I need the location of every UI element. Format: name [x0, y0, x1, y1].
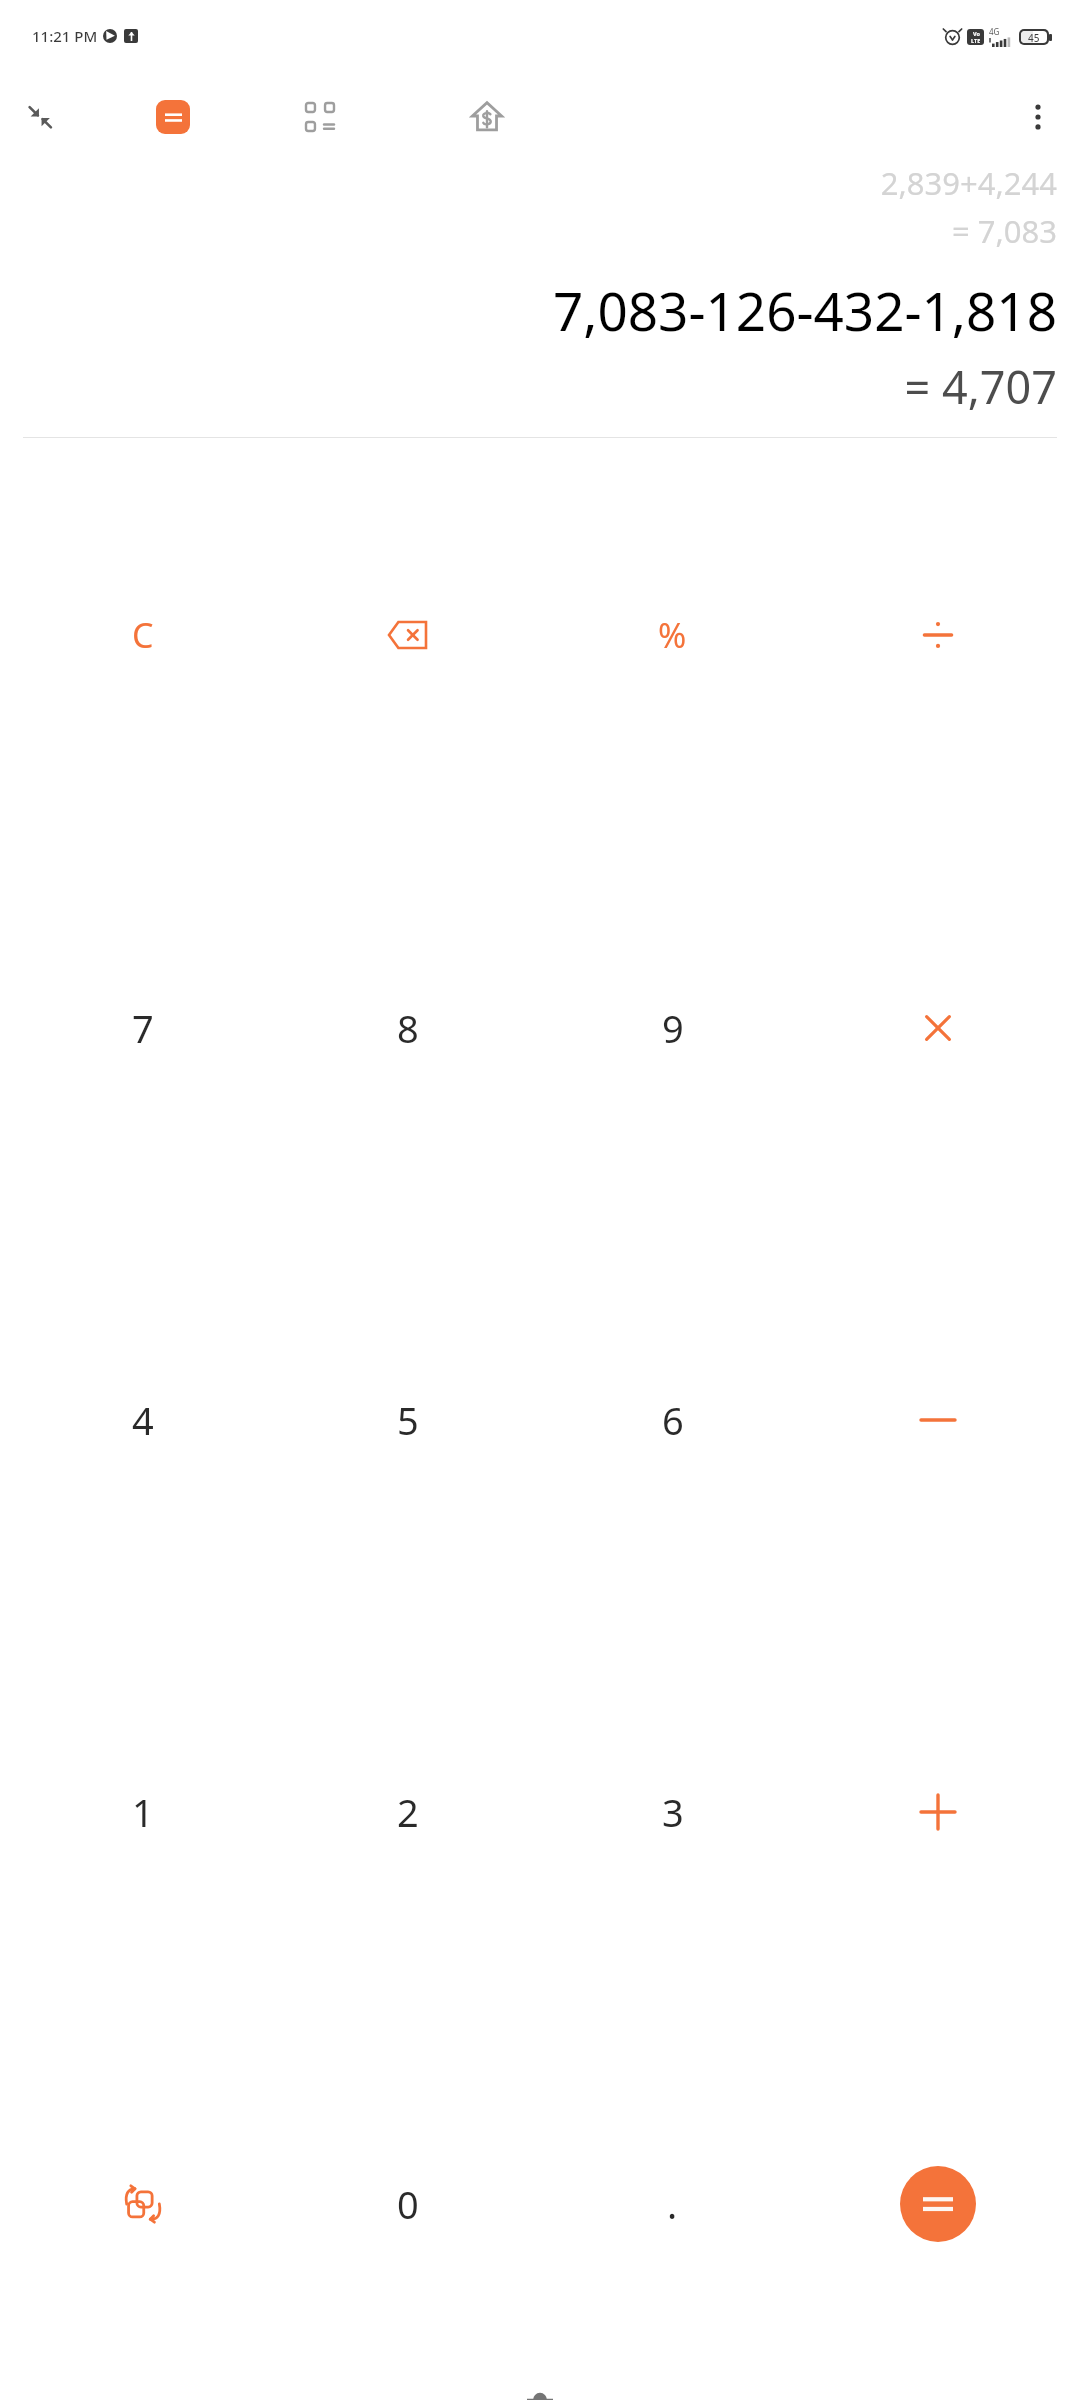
button[interactable]: 1: [10, 1616, 275, 2008]
button[interactable]: 8: [275, 831, 540, 1224]
staticText: 2,839+4,244: [880, 162, 1057, 204]
staticText: 45: [1028, 31, 1040, 43]
button[interactable]: C: [10, 438, 275, 831]
button[interactable]: 2: [275, 1616, 540, 2008]
button[interactable]: More options: [1010, 89, 1066, 145]
staticText: 11:21 PM: [32, 26, 98, 46]
staticText: %: [658, 612, 687, 658]
button[interactable]: Mortgage: [456, 86, 518, 148]
button[interactable]: 3: [540, 1616, 805, 2008]
button[interactable]: 6: [540, 1224, 805, 1616]
button[interactable]: Equals: [805, 2008, 1070, 2400]
staticText: 6: [662, 1394, 684, 1446]
other: Minus: [921, 1415, 955, 1425]
button[interactable]: Collapse: [12, 89, 68, 145]
staticText: 5: [397, 1394, 419, 1446]
button[interactable]: 9: [540, 831, 805, 1224]
staticText: 7: [132, 1002, 154, 1054]
button[interactable]: 0: [275, 2008, 540, 2400]
button[interactable]: Minus: [805, 1224, 1070, 1616]
button[interactable]: Plus: [805, 1616, 1070, 2008]
staticText: 4: [132, 1394, 154, 1446]
button[interactable]: .: [540, 2008, 805, 2400]
staticText: C: [132, 612, 154, 658]
staticText: = 7,083: [951, 210, 1057, 252]
staticText: 7,083-126-432-1,818: [552, 274, 1057, 346]
staticText: .: [667, 2178, 678, 2230]
staticText: 8: [397, 1002, 419, 1054]
button[interactable]: %: [540, 438, 805, 831]
staticText: 0: [397, 2178, 419, 2230]
button[interactable]: Multiply: [805, 831, 1070, 1224]
staticText: 3: [662, 1786, 684, 1838]
staticText: = 4,707: [904, 356, 1057, 417]
button[interactable]: Layouts: [292, 89, 348, 145]
button[interactable]: 7: [10, 831, 275, 1224]
button[interactable]: Backspace: [275, 438, 540, 831]
other: Multiply: [923, 1013, 953, 1043]
button[interactable]: Equals: [900, 2166, 976, 2242]
button[interactable]: 4: [10, 1224, 275, 1616]
staticText: 2: [397, 1786, 419, 1838]
staticText: 9: [662, 1002, 684, 1054]
staticText: 1: [132, 1786, 154, 1838]
staticText: Vo: [973, 30, 980, 37]
other: Divide: [921, 618, 955, 652]
button[interactable]: Unit converter: [10, 2008, 275, 2400]
other: Unit converter: [124, 2185, 162, 2223]
button[interactable]: Divide: [805, 438, 1070, 831]
other: Backspace: [388, 621, 428, 649]
other: Plus: [921, 1795, 955, 1829]
button[interactable]: Calculator: [145, 89, 201, 145]
button[interactable]: 5: [275, 1224, 540, 1616]
staticText: 4G: [989, 26, 1000, 37]
staticText: LTE: [971, 37, 981, 44]
